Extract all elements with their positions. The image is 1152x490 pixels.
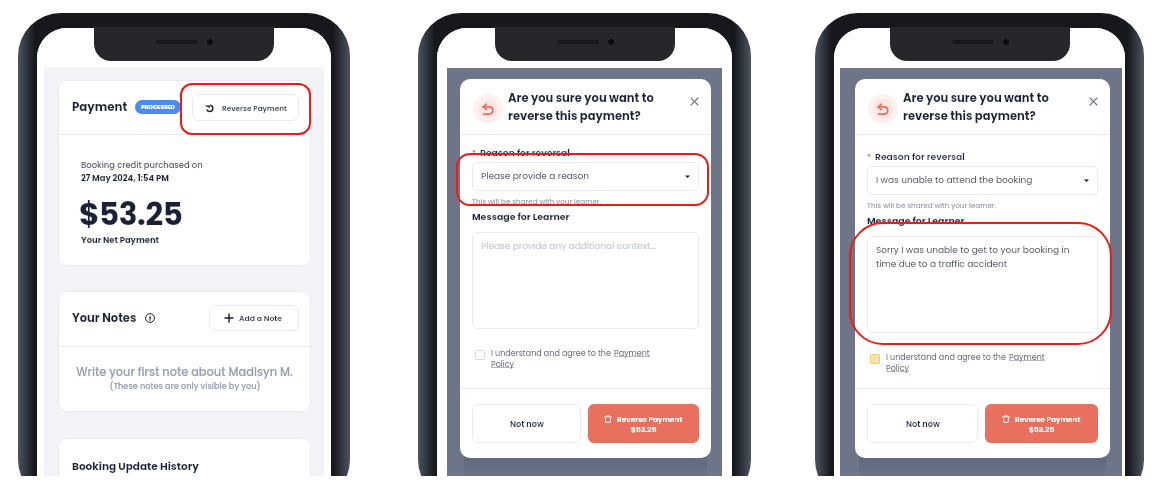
staticText: Payment (72, 99, 128, 116)
button[interactable]: Not now (472, 404, 581, 443)
staticText: Reverse Payment (617, 414, 683, 424)
staticText: I understand and agree to the (886, 352, 1009, 363)
button[interactable]: Reverse Payment (985, 404, 1098, 443)
button[interactable]: Not now (867, 404, 978, 443)
button[interactable]: I was unable to attend the booking (867, 166, 1098, 195)
staticText: Are you sure you want to reverse this pa… (903, 90, 1049, 124)
staticText: 27 May 2024, 1:54 PM (81, 172, 169, 184)
staticText: Write your first note about Madisyn M. (76, 364, 293, 380)
staticText: $53.25 (79, 192, 183, 235)
staticText: (These notes are only visible by you) (109, 380, 261, 391)
staticText: Add a Note (239, 313, 283, 324)
staticText: I was unable to attend the booking (876, 174, 1084, 187)
button[interactable]: Add a Note (209, 305, 299, 331)
staticText: I understand and agree to the (491, 348, 614, 359)
button[interactable]: Please provide a reason (472, 162, 699, 191)
staticText: Reverse Payment (222, 103, 287, 113)
button[interactable]: Please provide any additional context... (472, 232, 699, 329)
button[interactable]: Close dialog (687, 94, 701, 108)
staticText: Your Net Payment (81, 234, 160, 246)
staticText: This will be shared with your learner. (867, 200, 997, 210)
staticText: Policy (886, 363, 910, 374)
staticText: Payment (614, 348, 650, 359)
staticText: Not now (906, 418, 940, 429)
staticText: Not now (510, 418, 544, 429)
staticText: * (472, 147, 477, 157)
staticText: Message for Learner (867, 214, 965, 227)
staticText: Are you sure you want to reverse this pa… (508, 90, 654, 124)
button[interactable]: Close dialog (1086, 94, 1100, 108)
staticText: $53.25 (1029, 424, 1055, 434)
button[interactable]: I understand and agree to the (472, 348, 699, 370)
staticText: Reason for reversal (480, 146, 570, 159)
staticText: * (867, 151, 872, 161)
button[interactable]: I understand and agree to the (867, 352, 1098, 374)
button[interactable]: Reverse Payment (192, 94, 299, 121)
staticText: Reverse Payment (1015, 414, 1081, 424)
staticText: PROCESSED (141, 103, 175, 111)
staticText: Booking Update History (72, 459, 199, 474)
staticText: $53.25 (631, 424, 657, 434)
staticText: Your Notes (72, 310, 137, 326)
staticText: Payment (1009, 352, 1045, 363)
staticText: Message for Learner (472, 210, 570, 223)
staticText: Policy (491, 359, 515, 370)
staticText: Reason for reversal (875, 150, 965, 163)
button[interactable]: Reverse Payment (588, 404, 699, 443)
button[interactable]: Sorry I was unable to get to your bookin… (867, 236, 1098, 333)
staticText: This will be shared with your learner. (472, 196, 602, 206)
staticText: Please provide a reason (481, 170, 685, 183)
staticText: Please provide any additional context... (481, 240, 656, 253)
staticText: Booking credit purchased on (81, 159, 203, 171)
staticText: Sorry I was unable to get to your bookin… (876, 244, 1089, 270)
